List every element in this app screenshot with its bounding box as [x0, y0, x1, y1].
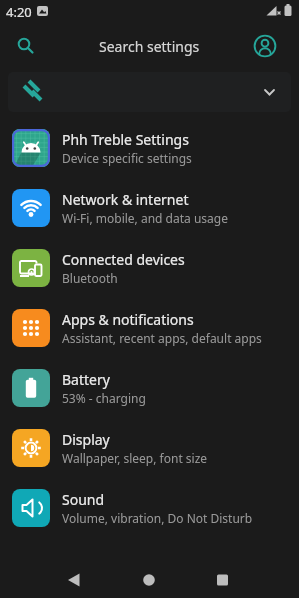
button[interactable]	[199, 562, 299, 598]
button[interactable]: Search settings	[0, 24, 299, 68]
staticText: Wi-Fi, mobile, and data usage	[62, 210, 228, 226]
button[interactable]: Apps & notifications	[0, 298, 299, 358]
staticText: Display	[62, 430, 110, 449]
staticText: Sound	[62, 490, 105, 509]
staticText: Bluetooth	[62, 270, 118, 286]
staticText: 53% - charging	[62, 390, 146, 406]
staticText: Device specific settings	[62, 150, 192, 166]
button[interactable]: Display	[0, 418, 299, 478]
button[interactable]	[8, 72, 291, 112]
staticText: Assistant, recent apps, default apps	[62, 330, 262, 346]
staticText: Network & internet	[62, 190, 189, 209]
staticText: Battery	[62, 370, 110, 389]
button[interactable]	[99, 562, 199, 598]
staticText: Volume, vibration, Do Not Disturb	[62, 510, 253, 526]
button[interactable]: Connected devices	[0, 238, 299, 298]
button[interactable]: Network & internet	[0, 178, 299, 238]
staticText: Phh Treble Settings	[62, 130, 189, 149]
button[interactable]: Sound	[0, 478, 299, 538]
staticText: Wallpaper, sleep, font size	[62, 450, 208, 466]
staticText: Apps & notifications	[62, 310, 194, 329]
staticText: Connected devices	[62, 250, 185, 269]
button[interactable]: Phh Treble Settings	[0, 118, 299, 178]
staticText: 4:20	[6, 3, 32, 21]
staticText: Search settings	[99, 37, 200, 56]
button[interactable]	[0, 562, 99, 598]
button[interactable]: Battery	[0, 358, 299, 418]
